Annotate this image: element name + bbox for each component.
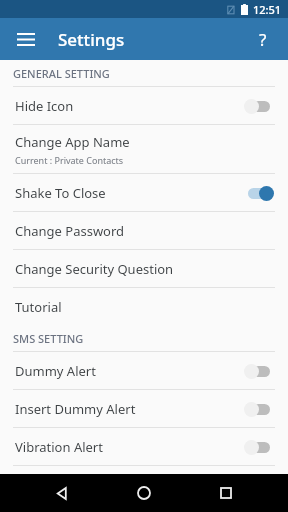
staticText: Current : Private Contacts	[15, 154, 124, 166]
button[interactable]: Insert Dummy Alert	[0, 390, 288, 427]
button[interactable]: Shake To Close	[0, 174, 288, 211]
staticText: Dummy Alert	[15, 362, 96, 380]
staticText: Change Password	[15, 222, 125, 240]
staticText: Change App Name	[15, 133, 130, 151]
button[interactable]: Help	[244, 20, 282, 58]
staticText: Insert Dummy Alert	[15, 400, 136, 418]
staticText: SMS SETTING	[13, 331, 84, 346]
staticText: ?	[259, 28, 267, 51]
staticText: GENERAL SETTING	[13, 66, 110, 81]
staticText: 12:51	[253, 2, 282, 17]
button[interactable]: Change Password	[0, 212, 288, 249]
button[interactable]: Back	[42, 474, 82, 512]
button[interactable]: Recent apps	[206, 474, 246, 512]
staticText: Shake To Close	[15, 184, 106, 202]
button[interactable]: Hide Icon	[0, 87, 288, 124]
button[interactable]: Change Security Question	[0, 250, 288, 287]
button[interactable]: Open navigation menu	[8, 21, 44, 57]
staticText: Vibration Alert	[15, 438, 103, 456]
button[interactable]: Home	[124, 474, 164, 512]
button[interactable]: Change App Name	[0, 125, 288, 173]
button[interactable]: Tutorial	[0, 288, 288, 325]
staticText: Change Security Question	[15, 260, 174, 278]
button[interactable]: Vibration Alert	[0, 428, 288, 465]
button[interactable]: Dummy Alert	[0, 352, 288, 389]
staticText: Settings	[58, 28, 125, 51]
staticText: Hide Icon	[15, 97, 74, 115]
staticText: Tutorial	[15, 298, 62, 316]
